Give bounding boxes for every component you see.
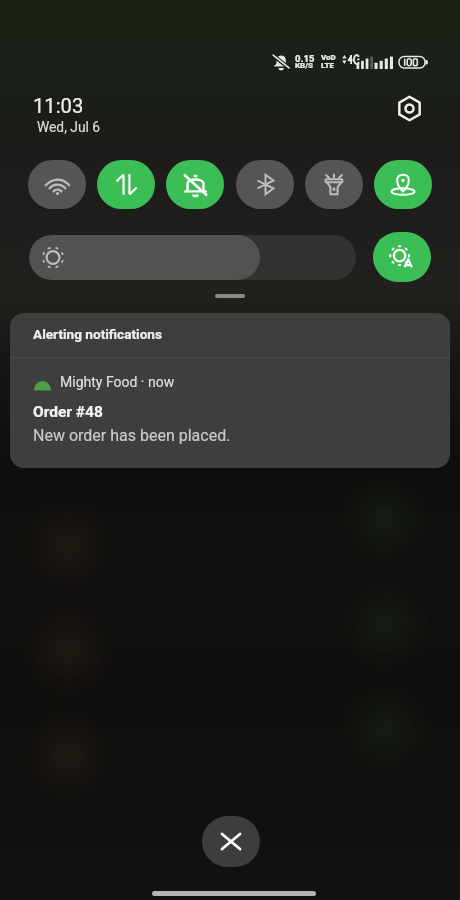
button[interactable]: Silent mode bbox=[166, 160, 224, 209]
staticText: Wed, Jul 6 bbox=[37, 119, 101, 135]
button[interactable]: Brightness bbox=[29, 235, 356, 280]
button[interactable]: Wi-Fi bbox=[28, 160, 86, 209]
button[interactable]: Flashlight bbox=[305, 160, 363, 209]
button[interactable]: Mighty Food · now bbox=[10, 358, 450, 468]
staticText: 11:03 bbox=[33, 94, 84, 118]
button[interactable]: Mobile data bbox=[97, 160, 155, 209]
button[interactable]: Auto brightness bbox=[373, 232, 431, 282]
staticText: VoD bbox=[321, 53, 336, 62]
staticText: Alerting notifications bbox=[33, 326, 162, 342]
button[interactable]: Location bbox=[374, 160, 432, 209]
button[interactable]: Bluetooth bbox=[236, 160, 294, 209]
staticText: KB/S bbox=[295, 61, 314, 70]
staticText: 0.15 bbox=[295, 53, 315, 64]
staticText: Mighty Food · now bbox=[60, 374, 175, 390]
button[interactable]: Settings bbox=[393, 92, 425, 124]
staticText: Order #48 bbox=[33, 403, 103, 421]
staticText: LTE bbox=[321, 61, 335, 70]
staticText: New order has been placed. bbox=[33, 426, 231, 445]
button[interactable]: Alerting notifications bbox=[10, 313, 450, 357]
button[interactable]: Close bbox=[202, 816, 260, 867]
